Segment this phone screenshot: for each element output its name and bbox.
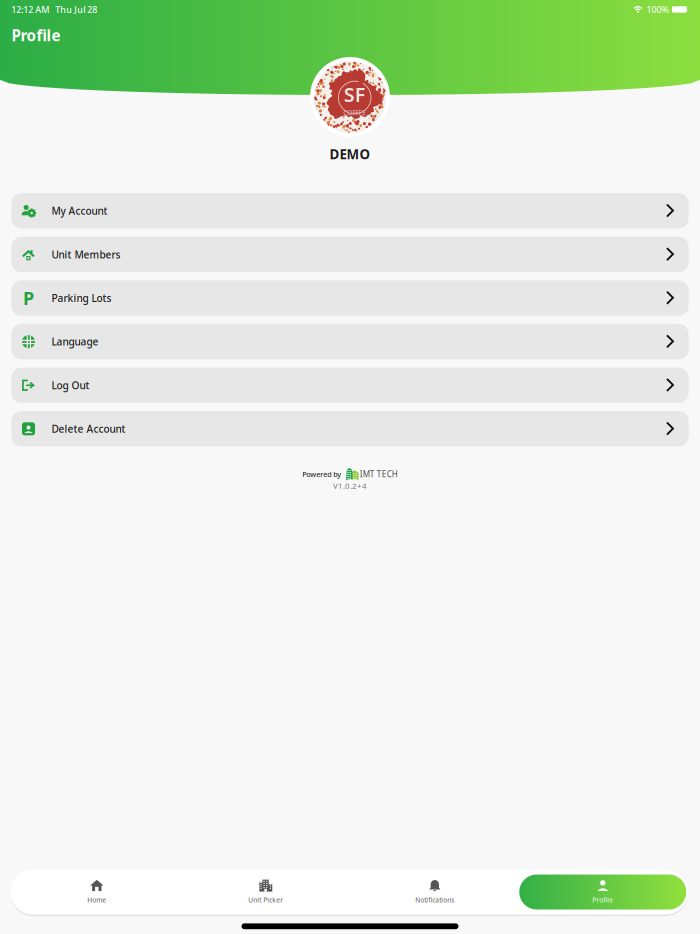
staticText: COFFEE: [343, 108, 366, 117]
staticText: DEMO: [329, 145, 370, 163]
button[interactable]: Unit Picker: [181, 874, 350, 909]
button[interactable]: Log Out: [11, 368, 689, 403]
staticText: Unit Picker: [248, 895, 283, 905]
staticText: Parking Lots: [52, 291, 112, 305]
button[interactable]: Profile: [519, 874, 686, 909]
button[interactable]: Language: [11, 324, 689, 359]
staticText: Log Out: [52, 378, 90, 392]
staticText: Profile: [11, 25, 60, 46]
staticText: Profile: [592, 895, 613, 905]
staticText: SF: [344, 81, 366, 108]
button[interactable]: P: [11, 280, 689, 316]
button[interactable]: Delete Account: [11, 411, 689, 447]
staticText: Powered by: [302, 469, 341, 479]
staticText: 12:12 AM: [11, 3, 49, 16]
staticText: Notifications: [415, 895, 454, 905]
staticText: Thu Jul 28: [55, 3, 97, 16]
staticText: P: [23, 286, 34, 310]
staticText: IMT TECH: [360, 469, 398, 480]
staticText: Language: [52, 335, 99, 349]
button[interactable]: Unit Members: [11, 237, 689, 272]
staticText: V1.0.2+4: [333, 480, 367, 491]
staticText: Home: [87, 895, 106, 905]
staticText: Delete Account: [52, 422, 126, 436]
button[interactable]: My Account: [11, 193, 689, 229]
button[interactable]: Home: [12, 874, 181, 909]
staticText: 100%: [646, 3, 669, 16]
staticText: Unit Members: [52, 248, 121, 261]
staticText: My Account: [52, 204, 108, 218]
button[interactable]: Notifications: [350, 874, 519, 909]
